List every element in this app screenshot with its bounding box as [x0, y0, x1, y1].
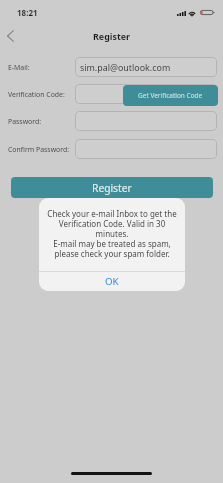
staticText: 18:21 [17, 7, 38, 18]
staticText: Confirm Password: [8, 145, 70, 154]
button[interactable] [75, 139, 217, 159]
staticText: Get Verification Code [138, 91, 203, 100]
button[interactable]: sim.pal@outlook.com [75, 57, 217, 77]
staticText: Register [92, 181, 132, 195]
button[interactable]: Back [0, 24, 22, 47]
button[interactable] [75, 111, 217, 131]
button[interactable]: OK [39, 272, 185, 291]
staticText: OK [105, 275, 119, 288]
button[interactable] [75, 84, 217, 104]
button[interactable]: Register [11, 177, 213, 198]
staticText: Check your e-mail Inbox to get the Verif… [43, 208, 181, 259]
button[interactable]: Get Verification Code [123, 85, 218, 106]
staticText: Verification Code: [8, 90, 65, 99]
staticText: E-Mail: [8, 63, 30, 72]
staticText: Register [93, 30, 131, 42]
staticText: Password: [8, 117, 42, 126]
staticText: sim.pal@outlook.com [80, 61, 171, 73]
